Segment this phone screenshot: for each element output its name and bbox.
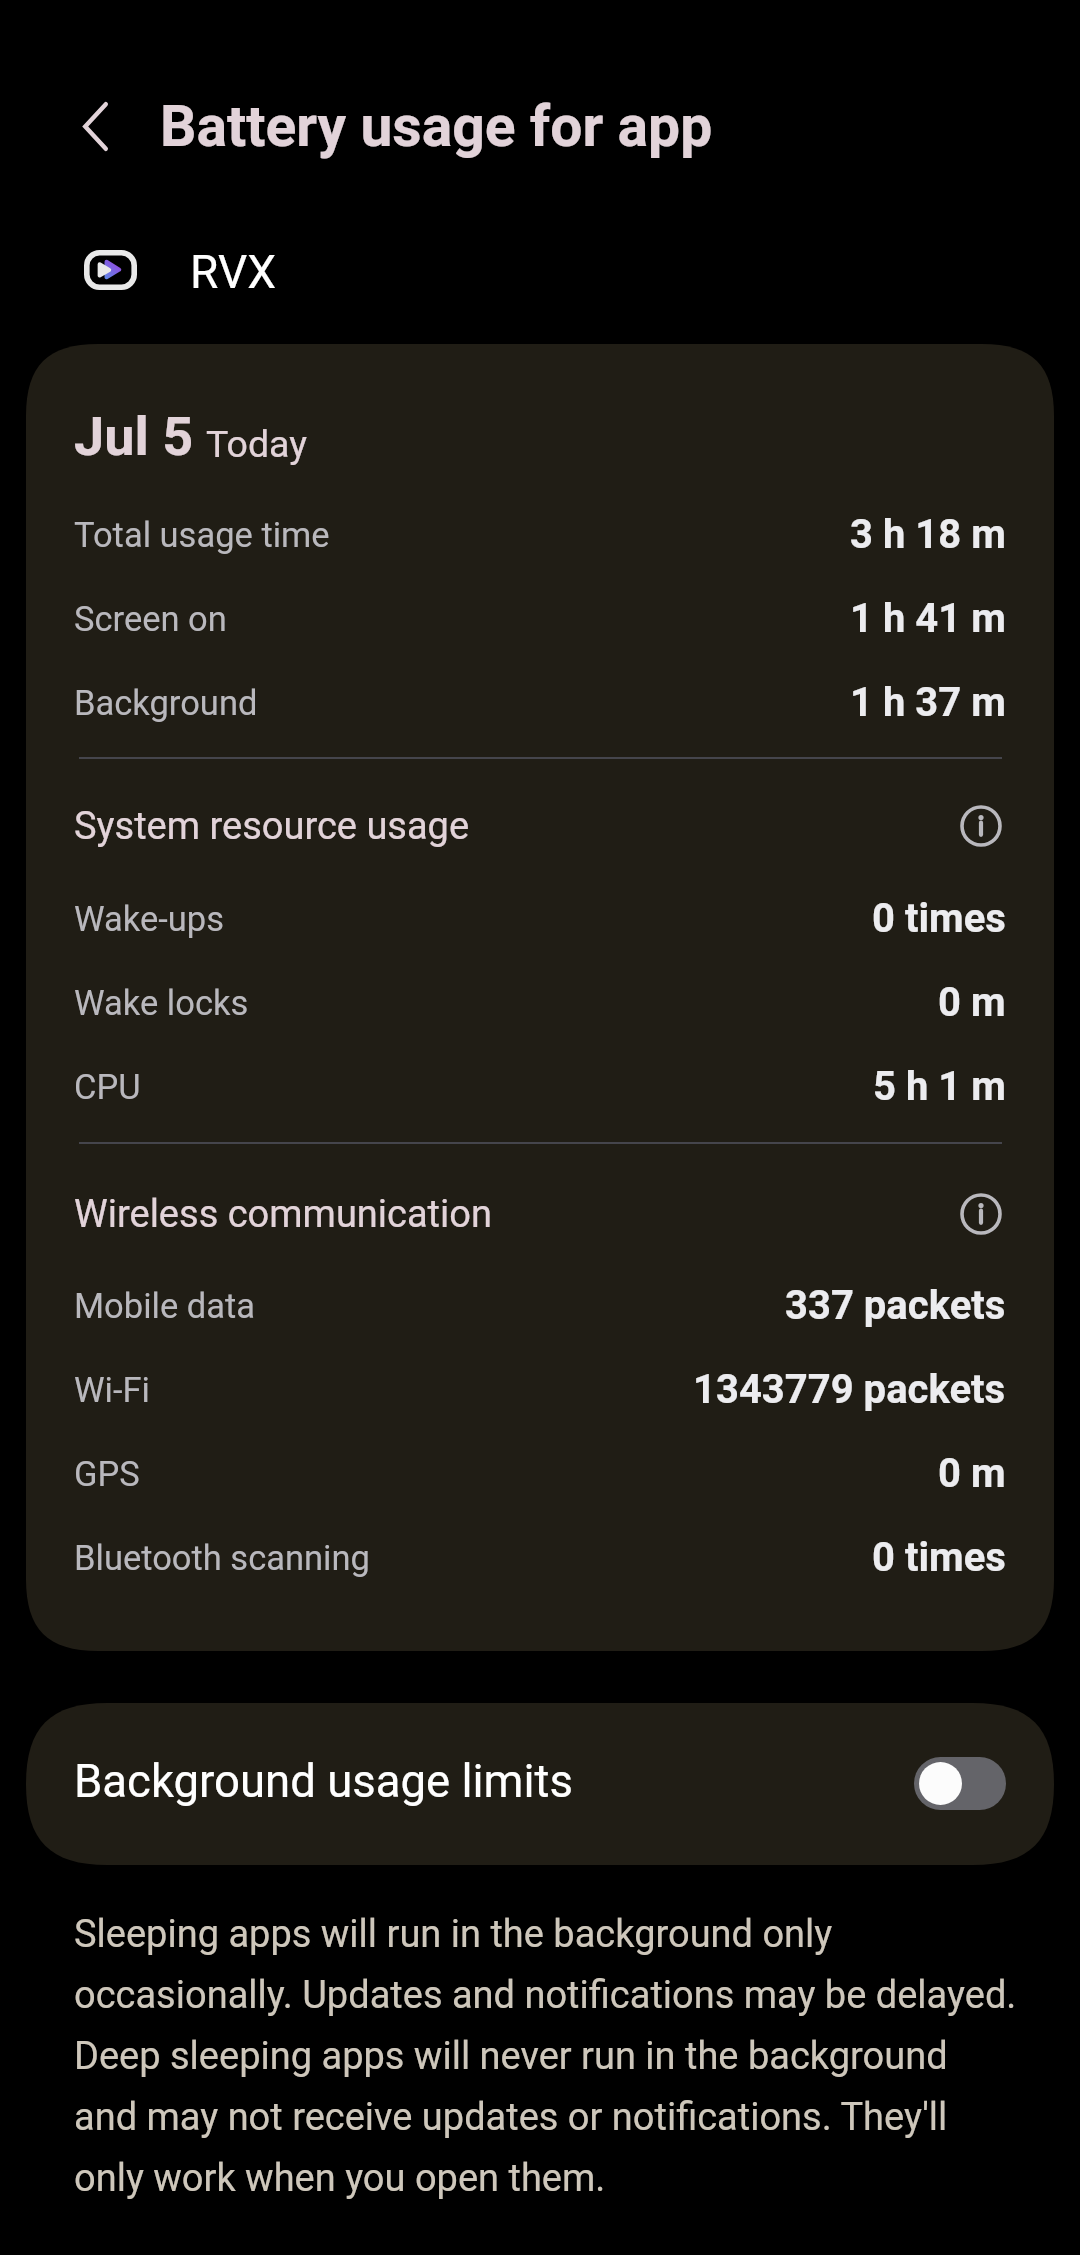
button[interactable]: Info about Wireless communication (950, 1183, 1012, 1245)
staticText: 5 h 1 m (873, 1064, 1006, 1110)
button[interactable]: Back (59, 90, 131, 162)
staticText: RVX (190, 247, 277, 299)
staticText: Sleeping apps will run in the background… (74, 1899, 1020, 2204)
button[interactable]: Background usage limits toggle (914, 1757, 1006, 1810)
staticText: 0 m (938, 1451, 1006, 1497)
button[interactable]: Background usage limits (26, 1703, 1054, 1865)
staticText: Total usage time (74, 514, 850, 556)
staticText: Jul 5 (74, 405, 194, 468)
staticText: 1 h 37 m (850, 680, 1006, 726)
staticText: Bluetooth scanning (74, 1537, 872, 1579)
staticText: 1 h 41 m (850, 596, 1006, 642)
staticText: Background (74, 682, 850, 724)
button[interactable]: Info about System resource usage (950, 795, 1012, 857)
staticText: Wake-ups (74, 898, 872, 940)
staticText: Wireless communication (74, 1191, 944, 1237)
staticText: GPS (74, 1453, 938, 1495)
staticText: 3 h 18 m (850, 512, 1006, 558)
staticText: 0 m (938, 980, 1006, 1026)
staticText: Wi-Fi (74, 1369, 693, 1411)
staticText: CPU (74, 1066, 873, 1108)
staticText: 0 times (872, 896, 1006, 942)
staticText: System resource usage (74, 803, 944, 849)
staticText: Today (206, 424, 307, 466)
staticText: 337 packets (785, 1283, 1006, 1329)
staticText: Wake locks (74, 982, 938, 1024)
staticText: Battery usage for app (160, 92, 713, 160)
staticText: Mobile data (74, 1285, 785, 1327)
staticText: Screen on (74, 598, 850, 640)
staticText: Background usage limits (74, 1759, 914, 1807)
staticText: 1343779 packets (693, 1367, 1006, 1413)
staticText: 0 times (872, 1535, 1006, 1581)
